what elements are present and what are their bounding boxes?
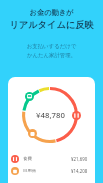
staticText: ¥21,690 xyxy=(71,156,88,162)
staticText: ¥14,208 xyxy=(71,168,88,174)
staticText: 日用品 xyxy=(23,168,37,174)
button[interactable]: 食費 xyxy=(72,111,81,120)
staticText: お支払いするだけで かんたん家計管理。 xyxy=(0,43,103,58)
staticText: ¥48,780 xyxy=(36,110,65,121)
staticText: お金の動きが xyxy=(0,8,103,17)
button[interactable]: 日用品 xyxy=(28,129,37,138)
button[interactable]: 食費 xyxy=(8,154,95,164)
button[interactable]: 交通費 xyxy=(25,92,34,101)
staticText: リアルタイムに反映 xyxy=(0,19,103,31)
staticText: 食費 xyxy=(23,156,32,162)
button[interactable]: 日用品 xyxy=(8,166,95,176)
